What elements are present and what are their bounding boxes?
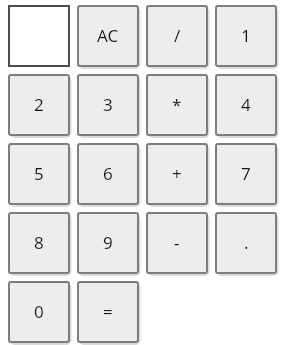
staticText: .: [244, 231, 249, 254]
button[interactable]: .: [215, 212, 277, 274]
staticText: 5: [34, 162, 44, 185]
button[interactable]: [8, 5, 70, 67]
staticText: 4: [241, 93, 251, 116]
staticText: +: [172, 162, 182, 185]
button[interactable]: -: [146, 212, 208, 274]
staticText: 7: [241, 162, 251, 185]
staticText: 8: [34, 231, 44, 254]
button[interactable]: /: [146, 5, 208, 67]
button[interactable]: 8: [8, 212, 70, 274]
button[interactable]: 6: [77, 143, 139, 205]
button[interactable]: =: [77, 281, 139, 343]
staticText: 3: [103, 93, 113, 116]
staticText: *: [172, 93, 182, 116]
staticText: 0: [34, 300, 44, 323]
button[interactable]: 1: [215, 5, 277, 67]
button[interactable]: 4: [215, 74, 277, 136]
staticText: -: [174, 231, 180, 254]
staticText: AC: [97, 24, 119, 47]
button[interactable]: 9: [77, 212, 139, 274]
staticText: 9: [103, 231, 113, 254]
staticText: 6: [103, 162, 113, 185]
button[interactable]: 0: [8, 281, 70, 343]
staticText: =: [103, 300, 113, 323]
button[interactable]: 2: [8, 74, 70, 136]
button[interactable]: *: [146, 74, 208, 136]
button[interactable]: 3: [77, 74, 139, 136]
button[interactable]: +: [146, 143, 208, 205]
button[interactable]: 5: [8, 143, 70, 205]
button[interactable]: AC: [77, 5, 139, 67]
button[interactable]: 7: [215, 143, 277, 205]
staticText: 2: [34, 93, 44, 116]
staticText: 1: [241, 24, 251, 47]
staticText: /: [174, 24, 181, 47]
